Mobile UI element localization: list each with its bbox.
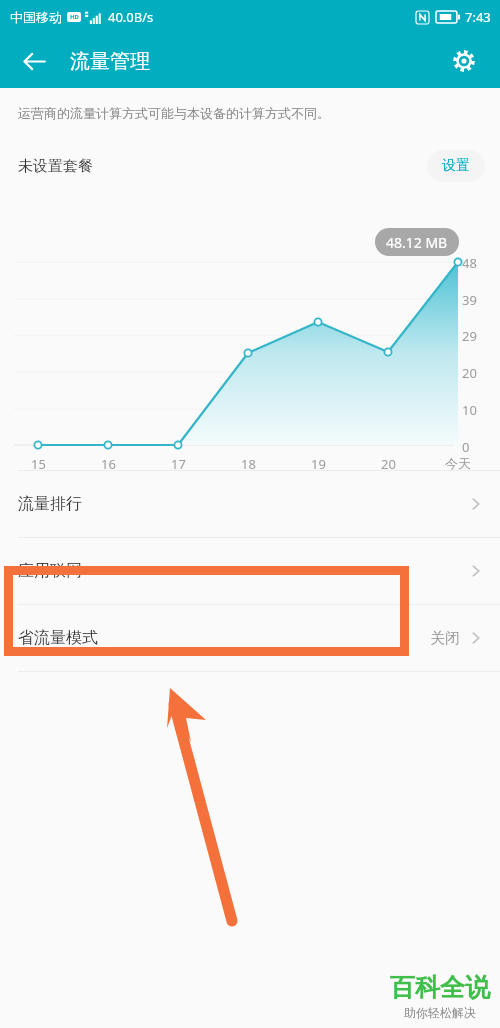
staticText: 0 bbox=[462, 438, 470, 456]
staticText: 运营商的流量计算方式可能与本设备的计算方式不同。 bbox=[18, 105, 330, 121]
staticText: 40.0B/s bbox=[108, 8, 154, 26]
staticText: 39 bbox=[462, 291, 477, 309]
staticText: 10 bbox=[462, 401, 477, 419]
staticText: 29 bbox=[462, 327, 477, 345]
staticText: 今天 bbox=[445, 455, 471, 471]
button[interactable]: 流量排行 bbox=[0, 471, 500, 537]
button[interactable]: 省流量模式 bbox=[0, 605, 500, 671]
staticText: 未设置套餐 bbox=[18, 157, 93, 176]
staticText: 关闭 bbox=[430, 629, 460, 648]
staticText: 19 bbox=[311, 455, 326, 473]
button[interactable]: 设置 bbox=[427, 150, 485, 182]
staticText: 省流量模式 bbox=[18, 628, 98, 648]
staticText: HD bbox=[70, 13, 79, 21]
staticText: 流量管理 bbox=[70, 49, 150, 74]
staticText: 48.12 MB bbox=[386, 233, 448, 252]
button[interactable]: 应用联网 bbox=[0, 538, 500, 604]
staticText: 16 bbox=[101, 455, 116, 473]
staticText: 7:43 bbox=[465, 8, 491, 26]
staticText: 15 bbox=[31, 455, 46, 473]
staticText: 18 bbox=[241, 455, 256, 473]
staticText: 设置 bbox=[442, 157, 470, 175]
staticText: 48 bbox=[462, 254, 477, 272]
button[interactable]: Back bbox=[14, 41, 54, 81]
staticText: 17 bbox=[171, 455, 186, 473]
staticText: 应用联网 bbox=[18, 561, 82, 581]
staticText: 20 bbox=[462, 364, 477, 382]
staticText: 流量排行 bbox=[18, 494, 82, 514]
staticText: 助你轻松解决 bbox=[404, 1005, 476, 1020]
staticText: 百科全说 bbox=[390, 972, 490, 1003]
staticText: 20 bbox=[381, 455, 396, 473]
staticText: 中国移动 bbox=[10, 9, 62, 25]
button[interactable]: Settings bbox=[444, 41, 484, 81]
